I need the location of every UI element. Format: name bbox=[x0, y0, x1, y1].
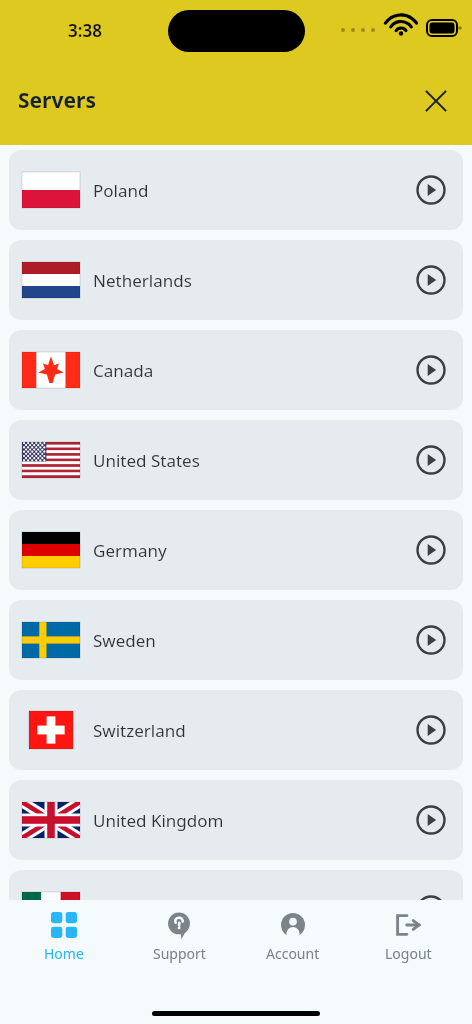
button[interactable]: Connect to Germany bbox=[412, 531, 450, 569]
staticText: Logout bbox=[385, 944, 432, 963]
button[interactable]: United States bbox=[9, 420, 463, 500]
button[interactable]: Netherlands bbox=[9, 240, 463, 320]
staticText: Poland bbox=[93, 179, 149, 202]
button[interactable]: X (Twitter) bbox=[416, 81, 456, 121]
staticText: Home bbox=[44, 944, 84, 963]
button[interactable]: Connect to United Kingdom bbox=[412, 801, 450, 839]
button[interactable]: Account bbox=[243, 910, 343, 965]
button[interactable]: Home bbox=[14, 910, 114, 965]
button[interactable]: Connect to Poland bbox=[412, 171, 450, 209]
button[interactable]: Canada bbox=[9, 330, 463, 410]
button[interactable]: Connect to Netherlands bbox=[412, 261, 450, 299]
button[interactable]: Support bbox=[129, 910, 229, 965]
staticText: United Kingdom bbox=[93, 809, 224, 832]
button[interactable]: Switzerland bbox=[9, 690, 463, 770]
staticText: Germany bbox=[93, 539, 167, 562]
button[interactable]: Connect to Sweden bbox=[412, 621, 450, 659]
staticText: 3:38 bbox=[68, 19, 102, 42]
staticText: Account bbox=[266, 944, 320, 963]
button[interactable]: Connect to Mexico bbox=[412, 891, 450, 929]
staticText: Netherlands bbox=[93, 269, 192, 292]
button[interactable]: Connect to Switzerland bbox=[412, 711, 450, 749]
staticText: Switzerland bbox=[93, 719, 186, 742]
button[interactable]: Mexico bbox=[9, 870, 463, 950]
staticText: Canada bbox=[93, 359, 154, 382]
staticText: Sweden bbox=[93, 629, 156, 652]
button[interactable]: United Kingdom bbox=[9, 780, 463, 860]
button[interactable]: Connect to United States bbox=[412, 441, 450, 479]
staticText: Support bbox=[153, 944, 206, 963]
button[interactable]: Sweden bbox=[9, 600, 463, 680]
button[interactable]: Logout bbox=[358, 910, 458, 965]
staticText: Mexico bbox=[93, 899, 150, 922]
button[interactable]: Germany bbox=[9, 510, 463, 590]
staticText: United States bbox=[93, 449, 200, 472]
button[interactable]: Poland bbox=[9, 150, 463, 230]
staticText: Servers bbox=[18, 86, 96, 115]
button[interactable]: Connect to Canada bbox=[412, 351, 450, 389]
